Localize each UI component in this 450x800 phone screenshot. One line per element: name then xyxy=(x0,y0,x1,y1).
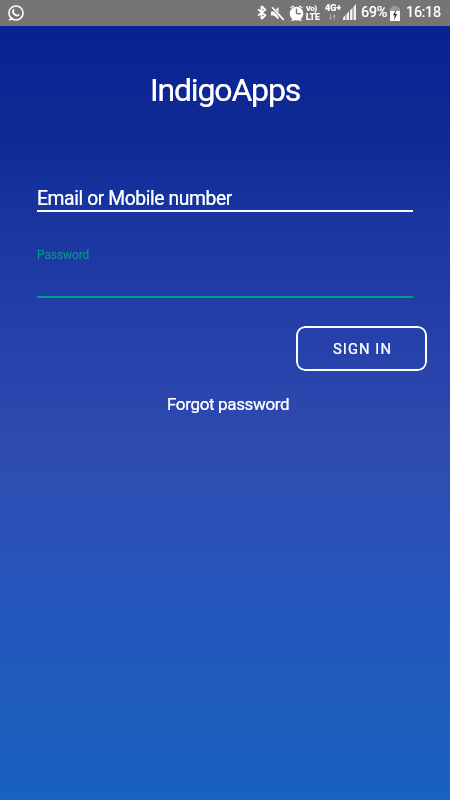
button[interactable]: Email or Mobile number xyxy=(37,180,413,213)
staticText: Email or Mobile number xyxy=(37,187,233,210)
other: WhatsApp notification xyxy=(8,5,24,21)
button[interactable]: Forgot password xyxy=(151,386,306,422)
staticText: Vo) xyxy=(306,4,318,12)
staticText: IndigoApps xyxy=(0,71,450,109)
staticText: 16:18 xyxy=(406,4,441,21)
staticText: 69% xyxy=(361,4,388,21)
button[interactable]: SIGN IN xyxy=(296,326,427,371)
staticText: LTE xyxy=(306,12,320,22)
staticText: 4G+ xyxy=(325,3,342,14)
button[interactable]: Password xyxy=(37,243,413,298)
staticText: SIGN IN xyxy=(333,340,393,357)
staticText: Forgot password xyxy=(167,394,290,414)
staticText: Password xyxy=(37,248,90,262)
